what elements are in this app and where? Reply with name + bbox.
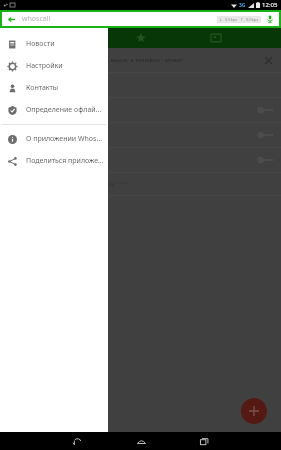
button[interactable]: Определение офлайн свед...: [0, 99, 108, 121]
staticText: Настройки: [26, 61, 63, 71]
staticText: 3G: [239, 2, 246, 9]
button[interactable]: [0, 98, 281, 122]
staticText: Определение офлайн свед...: [26, 105, 105, 115]
button[interactable]: [0, 123, 281, 147]
button[interactable]: Contacts: [205, 28, 227, 48]
button[interactable]: Поделиться приложением...: [0, 150, 108, 172]
button[interactable]: Back: [6, 14, 16, 24]
button[interactable]: Home: [134, 434, 148, 448]
staticText: О приложении Whoscall: [26, 134, 105, 144]
button[interactable]: Voice search: [265, 14, 275, 24]
button[interactable]: Back: [70, 434, 84, 448]
staticText: Поделиться приложением...: [26, 156, 105, 166]
staticText: Новости: [26, 39, 55, 49]
button[interactable]: Контакты: [0, 77, 108, 99]
staticText: 12:05: [262, 1, 278, 9]
button[interactable]: [0, 148, 281, 172]
staticText: ↑: [240, 17, 244, 22]
staticText: 0.5kps: [225, 17, 238, 22]
staticText: 0.0kps: [246, 17, 259, 22]
button[interactable]: Favourites: [130, 28, 152, 48]
button[interactable]: Dial: [241, 398, 267, 424]
button[interactable]: Настройки: [0, 55, 108, 77]
staticText: Whoscall работает на Android 4.4 и выше,…: [8, 56, 184, 64]
button[interactable]: Recent apps: [197, 434, 211, 448]
button[interactable]: О приложении Whoscall: [0, 128, 108, 150]
staticText: Контакты: [26, 83, 59, 93]
staticText: Чтобы позвонить, нажмите клавишу " + ": [8, 180, 128, 188]
button[interactable]: Close: [261, 53, 275, 67]
button[interactable]: Новости: [0, 33, 108, 55]
button[interactable]: [0, 73, 281, 97]
staticText: whoscall: [22, 14, 51, 24]
staticText: ↓: [219, 17, 223, 22]
